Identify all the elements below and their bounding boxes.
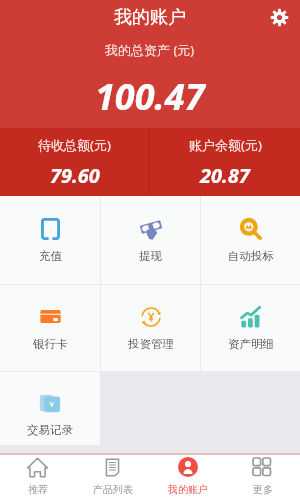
staticText: 100.47 [95, 72, 205, 121]
staticText: 我的账户 [168, 483, 208, 496]
button[interactable]: 提现 [101, 196, 200, 284]
button[interactable]: 交易记录 [0, 384, 100, 445]
staticText: 79.60 [50, 162, 100, 189]
staticText: 推荐 [28, 483, 48, 496]
staticText: 待收总额(元) [38, 136, 111, 154]
button[interactable]: 待收总额(元) [0, 128, 149, 196]
staticText: 账户余额(元) [189, 136, 262, 154]
button[interactable]: 更多 [225, 455, 300, 500]
staticText: 投资管理 [128, 337, 174, 351]
button[interactable]: 投资管理 [101, 285, 200, 371]
staticText: 自动投标 [228, 249, 274, 263]
button[interactable]: 银行卡 [0, 285, 100, 371]
button[interactable]: 推荐 [0, 455, 75, 500]
button[interactable]: Settings [266, 4, 292, 30]
staticText: 20.87 [200, 162, 250, 189]
button[interactable]: 充值 [0, 196, 100, 284]
staticText: 银行卡 [33, 337, 68, 351]
button[interactable]: 我的账户 [150, 455, 225, 500]
staticText: 产品列表 [93, 483, 133, 496]
button[interactable]: 自动投标 [201, 196, 300, 284]
staticText: 交易记录 [27, 423, 73, 437]
staticText: 我的账户 [114, 6, 186, 29]
button[interactable]: 资产明细 [201, 285, 300, 371]
staticText: 更多 [253, 483, 273, 496]
staticText: 资产明细 [228, 337, 274, 351]
staticText: 提现 [139, 249, 162, 263]
staticText: 我的总资产 (元) [105, 41, 195, 59]
button[interactable]: 账户余额(元) [150, 128, 300, 196]
staticText: 充值 [39, 249, 62, 263]
button[interactable]: 产品列表 [75, 455, 150, 500]
